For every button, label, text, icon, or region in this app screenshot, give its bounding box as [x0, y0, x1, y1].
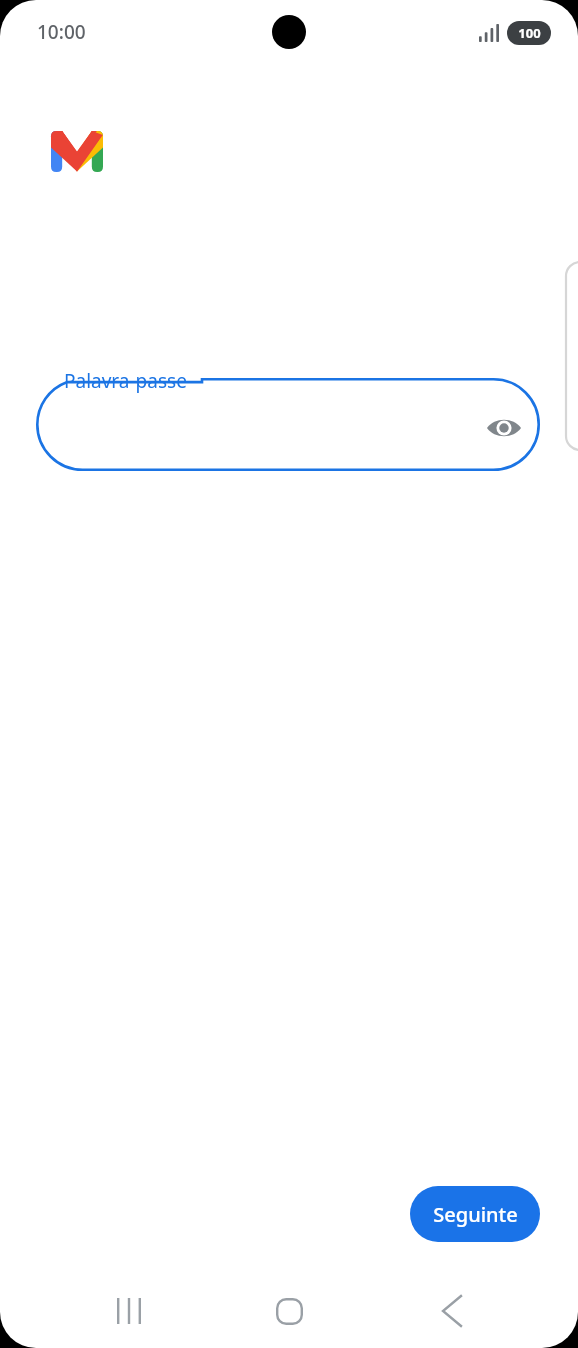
- staticText: Seguinte: [433, 1201, 518, 1228]
- button[interactable]: Palavra-passe: [36, 378, 540, 471]
- button[interactable]: Recentes: [97, 1279, 161, 1343]
- button[interactable]: Mostrar palavra-passe: [480, 404, 528, 452]
- staticText: Palavra-passe: [64, 368, 187, 394]
- button[interactable]: Início: [257, 1279, 321, 1343]
- button[interactable]: Seguinte: [410, 1186, 540, 1242]
- staticText: 100: [518, 24, 541, 42]
- staticText: 10:00: [37, 19, 86, 45]
- button[interactable]: Voltar: [420, 1279, 484, 1343]
